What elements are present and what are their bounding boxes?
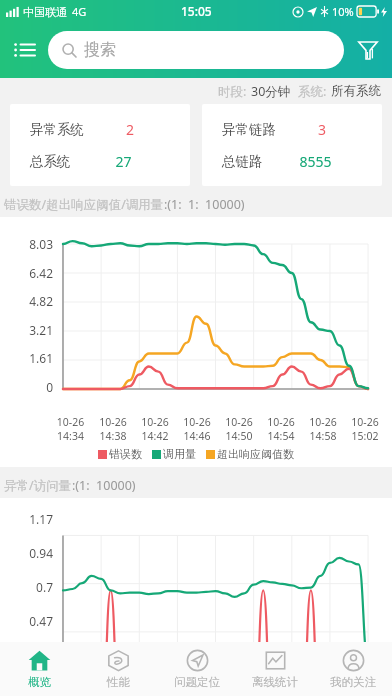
staticText: 我的关注 [330,675,376,689]
staticText: 10-26 [218,415,260,429]
staticText: 3.21 [0,322,53,338]
button[interactable]: 离线统计 [236,642,314,696]
staticText: 概览 [28,675,51,689]
staticText: 中国联通 [23,5,67,19]
staticText: 8.03 [0,236,53,252]
staticText: 14:58 [302,429,344,443]
staticText: 总链路 [222,153,263,170]
staticText: 离线统计 [252,675,298,689]
staticText: 0 [0,379,53,395]
staticText: 异常/访问量 [4,477,72,494]
button[interactable]: Filter [344,22,392,78]
staticText: 10% [332,4,354,19]
staticText: 问题定位 [174,675,220,689]
button[interactable]: 概览 [0,642,79,696]
staticText: 10-26 [134,415,176,429]
button[interactable]: 异常系统 [10,104,190,186]
staticText: 异常链路 [222,121,276,138]
staticText: 所有系统 [331,83,381,99]
button[interactable]: 30分钟 [251,83,291,100]
button[interactable]: 异常链路 [202,104,382,186]
staticText: 0.94 [0,545,53,561]
staticText: 错误数 [109,447,142,461]
button[interactable]: Menu [0,22,48,78]
staticText: 2 [90,120,170,139]
staticText: 0.47 [0,613,53,629]
staticText: 1.17 [0,511,53,527]
staticText: 10-26 [49,415,92,429]
staticText: 15:05 [181,3,212,19]
staticText: 14:54 [260,429,302,443]
staticText: 30分钟 [251,83,291,100]
staticText: 调用量 [163,447,196,461]
staticText: 10-26 [260,415,302,429]
button[interactable]: 我的关注 [314,642,392,696]
staticText: 14:46 [176,429,218,443]
button[interactable]: 所有系统 [331,83,381,99]
staticText: 超出响应阈值数 [217,447,294,461]
staticText: 3 [282,120,362,139]
staticText: 10-26 [344,415,386,429]
button[interactable]: 问题定位 [158,642,236,696]
staticText: 0.7 [0,579,53,595]
staticText: 10-26 [302,415,344,429]
staticText: 异常系统 [30,121,84,138]
staticText: 14:38 [92,429,134,443]
staticText: 14:42 [134,429,176,443]
staticText: :(1: 1: 10000) [164,196,245,213]
staticText: 1.61 [0,350,53,366]
staticText: 性能 [107,675,130,689]
staticText: 15:02 [344,429,386,443]
staticText: 系统: [298,83,327,100]
staticText: 总系统 [30,153,71,170]
staticText: 6.42 [0,265,53,281]
button[interactable]: 搜索 [48,31,344,69]
staticText: 14:34 [49,429,92,443]
staticText: 10-26 [176,415,218,429]
staticText: 错误数/超出响应阈值/调用量 [4,196,164,213]
button[interactable]: 性能 [79,642,158,696]
staticText: 8555 [269,152,362,171]
staticText: 10-26 [92,415,134,429]
staticText: 4G [72,4,87,19]
staticText: :(1: 10000) [72,477,136,494]
staticText: 时段: [218,83,247,100]
staticText: 27 [77,152,170,171]
staticText: 14:50 [218,429,260,443]
staticText: 4.82 [0,293,53,309]
staticText: 搜索 [84,40,116,60]
